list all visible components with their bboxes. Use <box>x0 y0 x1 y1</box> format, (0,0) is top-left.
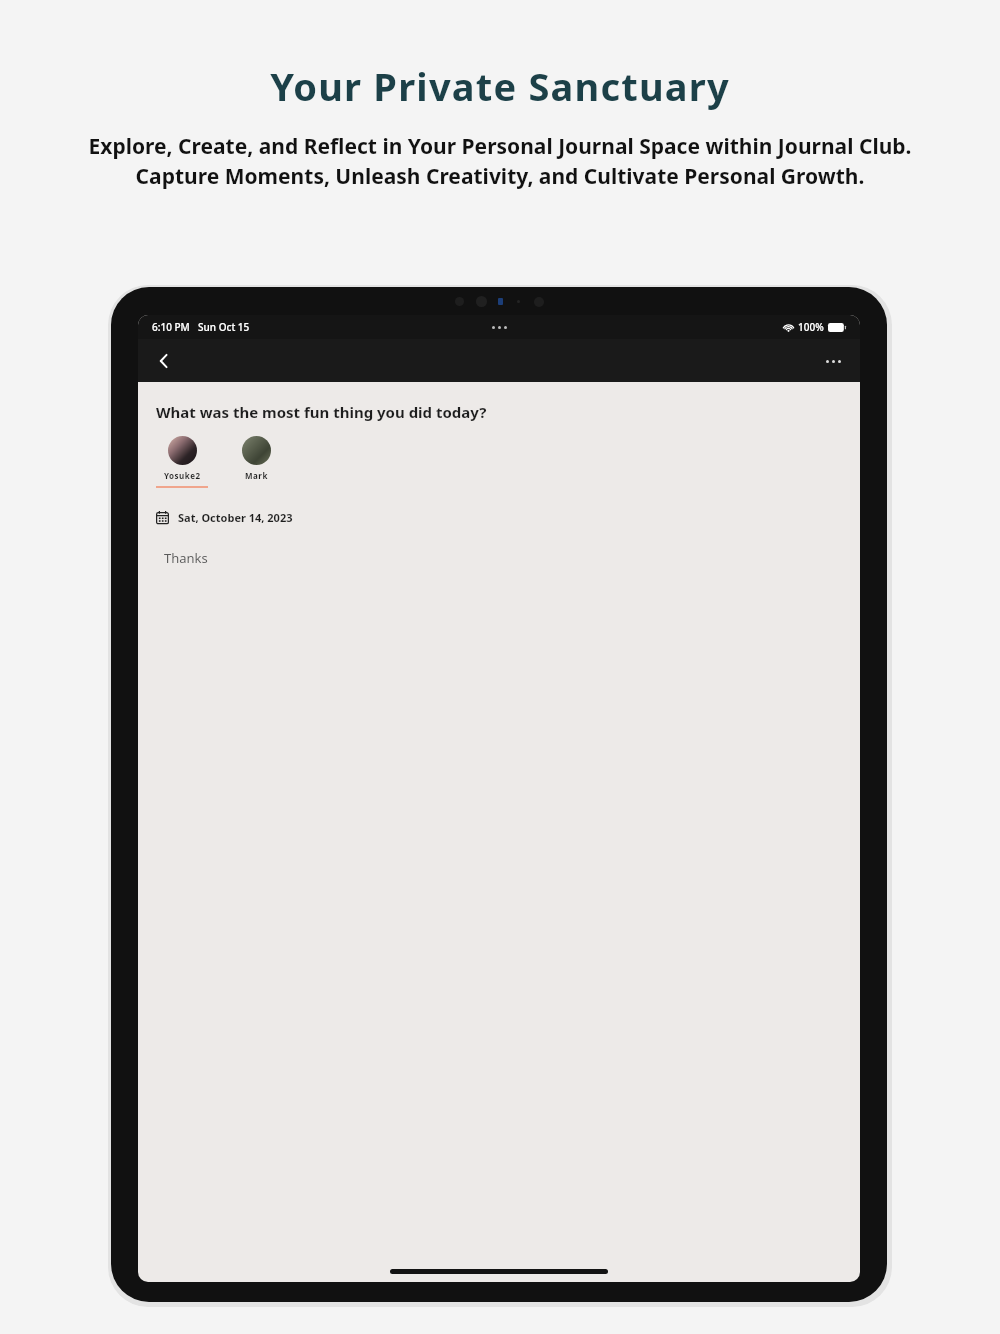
staticText: Explore, Create, and Reflect in Your Per… <box>60 132 940 190</box>
staticText: 100% <box>798 320 824 334</box>
staticText: 6:10 PM <box>152 320 190 334</box>
button[interactable]: Mark <box>230 436 282 488</box>
button[interactable]: Yosuke2 <box>156 436 208 488</box>
button[interactable]: Thanks <box>164 549 842 567</box>
staticText: Sun Oct 15 <box>198 320 250 334</box>
staticText: What was the most fun thing you did toda… <box>156 402 487 422</box>
staticText: Mark <box>245 470 268 481</box>
staticText: Yosuke2 <box>164 470 201 481</box>
button[interactable]: More options <box>816 344 850 378</box>
staticText: Your Private Sanctuary <box>270 60 730 112</box>
staticText: Thanks <box>164 549 208 567</box>
button[interactable]: Back <box>146 343 182 379</box>
staticText: Sat, October 14, 2023 <box>178 510 293 525</box>
